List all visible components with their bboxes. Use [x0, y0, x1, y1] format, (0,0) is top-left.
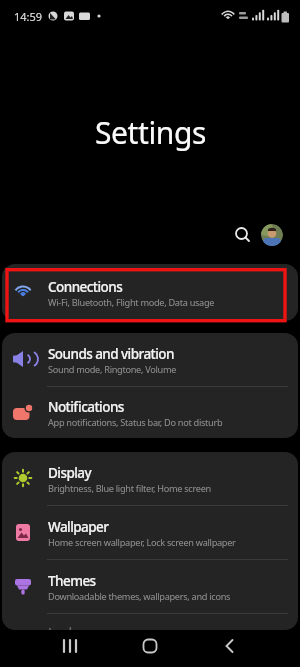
staticText: Home screen wallpaper, Lock screen wallp…	[48, 536, 236, 549]
button[interactable]	[30, 630, 110, 662]
staticText: Downloadable themes, wallpapers, and ico…	[48, 590, 231, 603]
button[interactable]	[261, 224, 283, 246]
button[interactable]: Display	[2, 452, 298, 505]
staticText: Notifications	[48, 398, 124, 416]
staticText: Sounds and vibration	[48, 345, 174, 363]
staticText: Connections	[48, 278, 123, 296]
button[interactable]: Wallpaper	[2, 506, 298, 559]
staticText: Themes	[48, 572, 96, 590]
button[interactable]: Connections	[2, 264, 298, 321]
staticText: Settings	[95, 112, 206, 153]
staticText: Brightness, Blue light filter, Home scre…	[48, 482, 211, 495]
button[interactable]: Themes	[2, 560, 298, 613]
staticText: Lock screen	[48, 624, 118, 630]
button[interactable]: Notifications	[2, 387, 298, 438]
staticText: Display	[48, 464, 92, 482]
button[interactable]: Sounds and vibration	[2, 333, 298, 386]
staticText: Wallpaper	[48, 518, 109, 536]
button[interactable]	[190, 630, 270, 662]
staticText: Sound mode, Ringtone, Volume	[48, 363, 177, 376]
button[interactable]	[228, 221, 256, 249]
button[interactable]	[110, 630, 190, 662]
staticText: 14:59	[14, 9, 43, 24]
staticText: App notifications, Status bar, Do not di…	[48, 416, 223, 429]
staticText: Wi-Fi, Bluetooth, Flight mode, Data usag…	[48, 296, 215, 309]
